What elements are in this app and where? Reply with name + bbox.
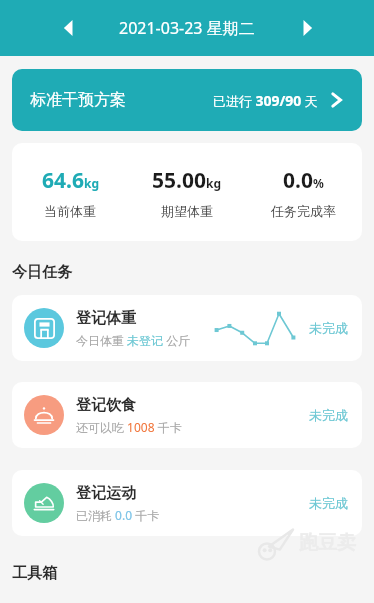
button[interactable]: Previous day (52, 11, 86, 45)
staticText: 55.00kg (152, 166, 221, 195)
staticText: 任务完成率 (271, 203, 336, 219)
staticText: 已消耗 0.0 千卡 (76, 507, 160, 523)
staticText: 登记体重 (76, 309, 136, 328)
staticText: 今日任务 (12, 263, 72, 282)
staticText: 登记运动 (76, 484, 136, 503)
staticText: 标准干预方案 (30, 90, 126, 110)
button[interactable]: 登记运动 (12, 470, 362, 536)
staticText: 2021-03-23 星期二 (119, 17, 255, 39)
staticText: 工具箱 (12, 564, 57, 583)
staticText: 未完成 (309, 495, 348, 511)
button[interactable]: 登记体重 (12, 295, 362, 361)
staticText: 期望体重 (161, 203, 213, 219)
button[interactable]: 55.00kg (128, 166, 245, 219)
button[interactable]: Next day (290, 11, 324, 45)
staticText: 登记饮食 (76, 396, 136, 415)
button[interactable]: 64.6kg (12, 166, 128, 219)
staticText: 64.6kg (42, 166, 99, 195)
staticText: 当前体重 (44, 203, 96, 219)
staticText: 0.0% (283, 166, 324, 195)
button[interactable]: 0.0% (245, 166, 362, 219)
staticText: 还可以吃 1008 千卡 (76, 419, 182, 435)
staticText: 今日体重 未登记 公斤 (76, 332, 191, 348)
button[interactable]: 登记饮食 (12, 382, 362, 448)
staticText: 跑豆卖 (299, 531, 356, 555)
button[interactable]: 标准干预方案 (12, 69, 362, 131)
staticText: 已进行 309/90 天 (213, 91, 318, 110)
staticText: 未完成 (309, 320, 348, 336)
staticText: 未完成 (309, 407, 348, 423)
